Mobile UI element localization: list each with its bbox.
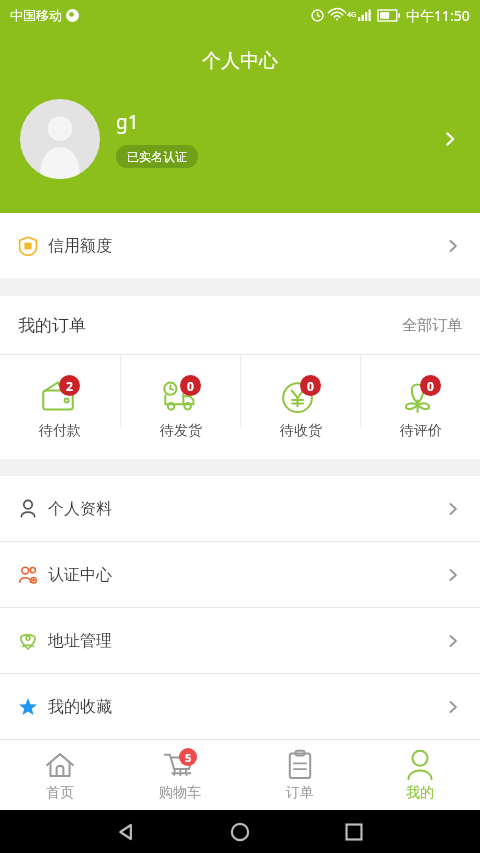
staticText: g1	[116, 109, 139, 135]
button[interactable]: 5	[120, 740, 240, 810]
button[interactable]: 信用额度	[0, 213, 480, 278]
staticText: 我的订单	[18, 315, 86, 336]
staticText: 信用额度	[48, 236, 112, 256]
staticText: 地址管理	[48, 631, 112, 651]
button[interactable]: 2	[0, 355, 120, 459]
staticText: 待发货	[160, 422, 202, 440]
staticText: 个人中心	[202, 49, 278, 73]
button[interactable]: 订单	[240, 740, 360, 810]
staticText: 中午11:50	[406, 6, 470, 25]
staticText: 2	[66, 378, 73, 394]
staticText: 4G	[347, 10, 357, 20]
staticText: 0	[307, 378, 314, 394]
staticText: 待收货	[280, 422, 322, 440]
staticText: 0	[427, 378, 434, 394]
staticText: 待付款	[39, 422, 81, 440]
staticText: 全部订单	[402, 316, 462, 335]
button[interactable]: 我的收藏	[0, 674, 480, 739]
staticText: 0	[187, 378, 194, 394]
staticText: 购物车	[159, 784, 201, 802]
button[interactable]: 0	[361, 355, 480, 459]
staticText: 5	[185, 750, 192, 765]
button[interactable]: 首页	[0, 740, 120, 810]
button[interactable]: 地址管理	[0, 608, 480, 673]
staticText: 首页	[46, 784, 74, 802]
staticText: 我的	[406, 784, 434, 802]
button[interactable]: g1	[0, 91, 480, 186]
staticText: 个人资料	[48, 499, 112, 519]
button[interactable]: 认证中心	[0, 542, 480, 607]
staticText: 待评价	[400, 422, 442, 440]
button[interactable]: 0	[241, 355, 360, 459]
staticText: 我的收藏	[48, 697, 112, 717]
staticText: 中国移动	[10, 7, 62, 23]
button[interactable]: 我的订单	[0, 296, 480, 354]
button[interactable]: 我的	[360, 740, 480, 810]
staticText: 已实名认证	[127, 149, 187, 164]
button[interactable]: 个人资料	[0, 476, 480, 541]
staticText: 认证中心	[48, 565, 112, 585]
button[interactable]: 0	[121, 355, 240, 459]
staticText: 订单	[286, 784, 314, 802]
